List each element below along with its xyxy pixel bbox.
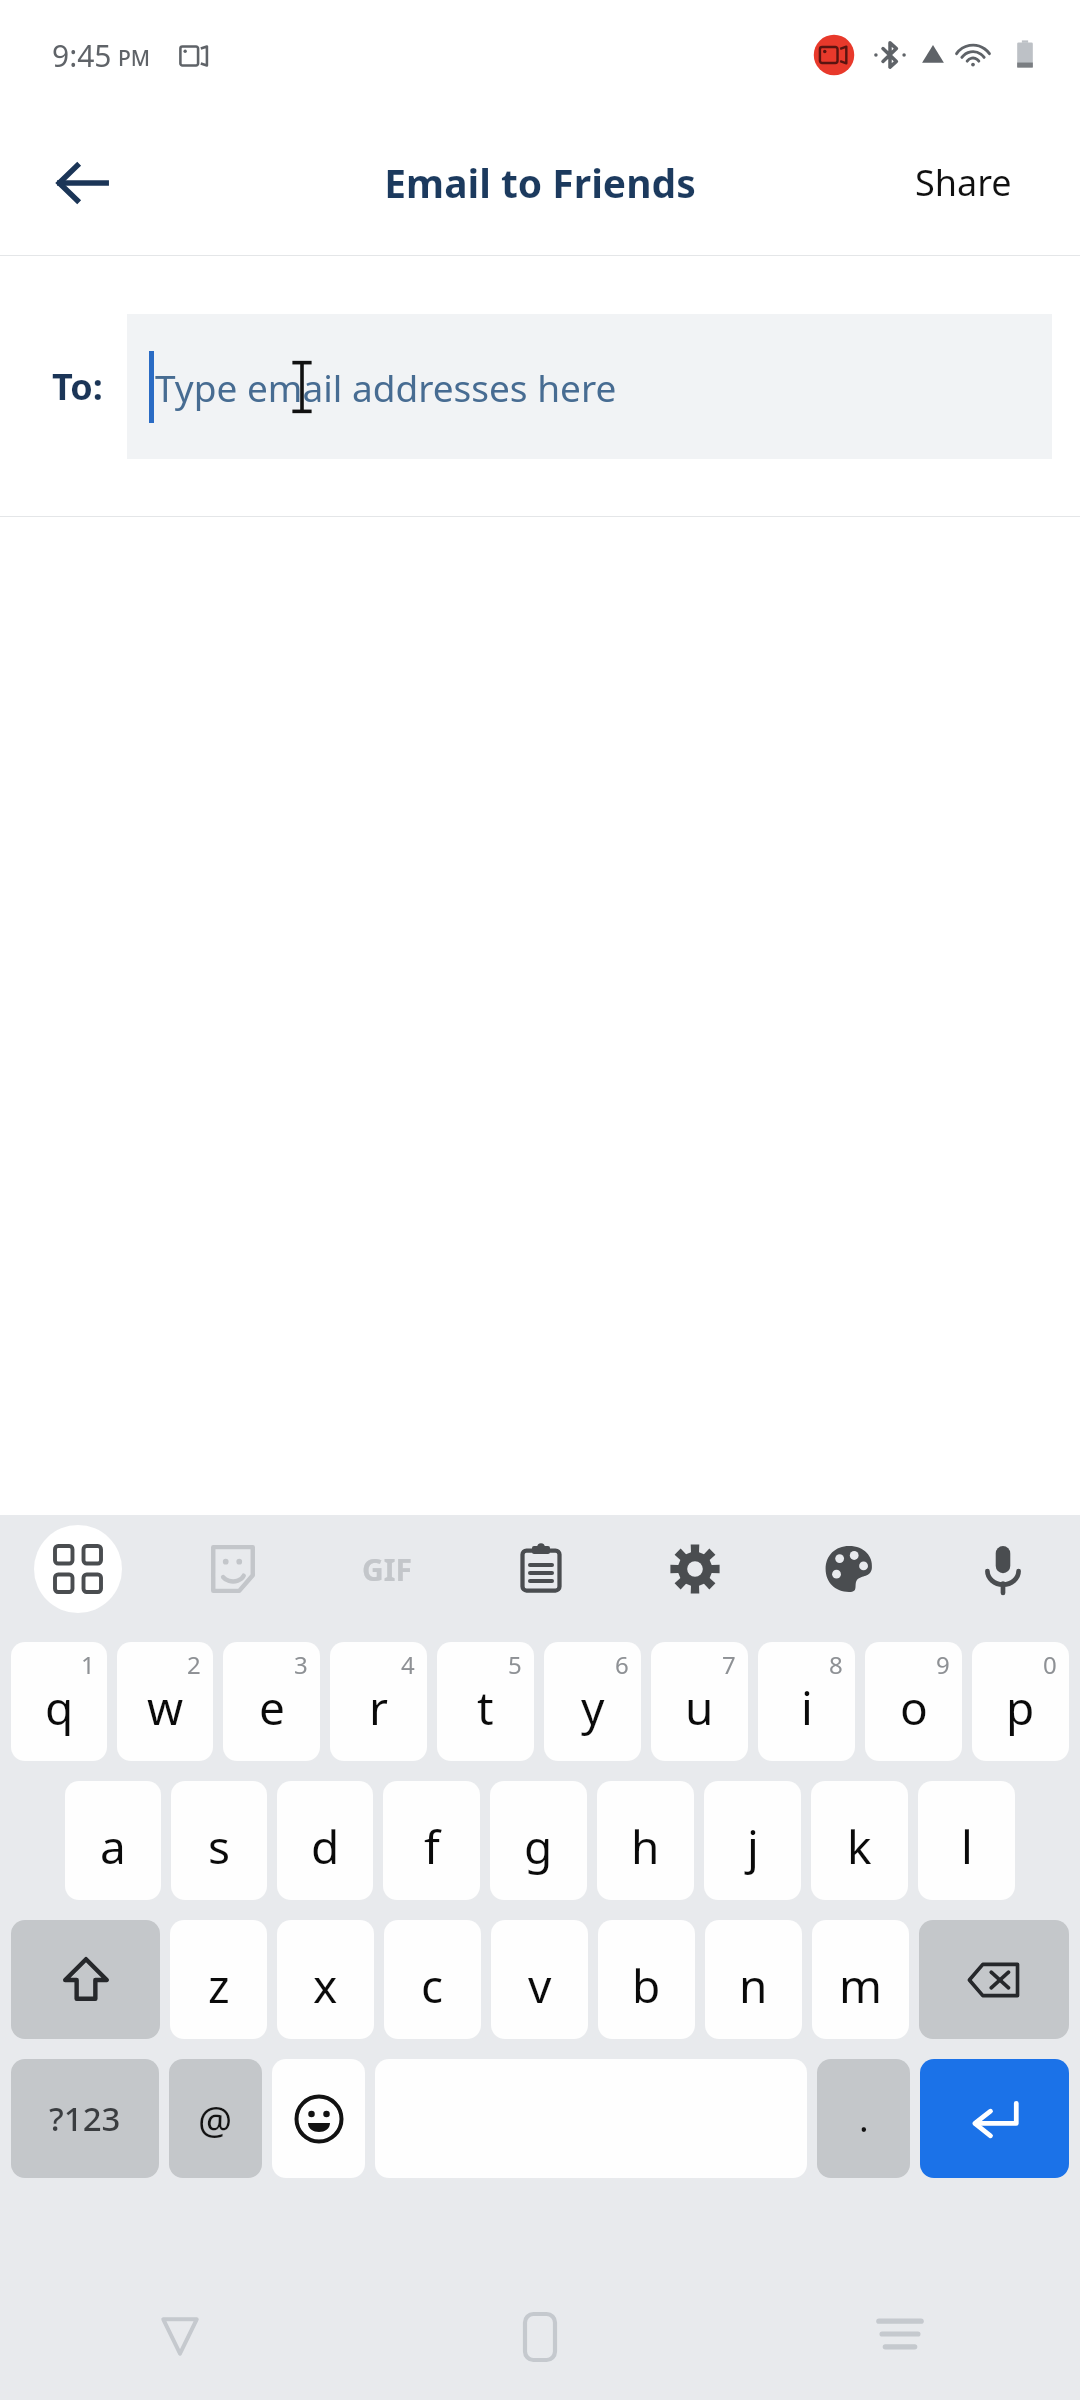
staticText: PM — [118, 44, 151, 73]
button[interactable]: Clipboard — [464, 1515, 618, 1623]
button[interactable]: Emoji — [272, 2059, 365, 2178]
staticText: c — [421, 1954, 444, 2017]
button[interactable]: r — [330, 1642, 427, 1761]
staticText: 3 — [294, 1648, 308, 1681]
staticText: o — [900, 1676, 928, 1739]
button[interactable]: b — [598, 1920, 695, 2039]
staticText: e — [259, 1676, 285, 1739]
button[interactable]: s — [171, 1781, 267, 1900]
staticText: v — [528, 1954, 552, 2017]
button[interactable]: @ — [169, 2059, 262, 2178]
staticText: f — [424, 1815, 440, 1878]
button[interactable]: a — [65, 1781, 161, 1900]
button[interactable]: q — [11, 1642, 107, 1761]
staticText: GIF — [362, 1549, 412, 1590]
button[interactable]: . — [817, 2059, 910, 2178]
button[interactable]: f — [383, 1781, 480, 1900]
button[interactable]: m — [812, 1920, 909, 2039]
button[interactable]: Voice input — [926, 1515, 1080, 1623]
button[interactable]: Back — [28, 128, 138, 238]
staticText: q — [45, 1676, 74, 1739]
staticText: z — [208, 1954, 230, 2017]
staticText: @ — [198, 2093, 233, 2145]
button[interactable]: y — [544, 1642, 641, 1761]
button[interactable]: Recents — [720, 2300, 1080, 2400]
button[interactable]: n — [705, 1920, 802, 2039]
staticText: w — [147, 1676, 184, 1739]
button[interactable]: Settings — [618, 1515, 772, 1623]
button[interactable]: v — [491, 1920, 588, 2039]
button[interactable]: d — [277, 1781, 373, 1900]
button[interactable]: l — [918, 1781, 1015, 1900]
button[interactable]: w — [117, 1642, 213, 1761]
button[interactable]: Theme — [772, 1515, 926, 1623]
staticText: 2 — [187, 1648, 201, 1681]
staticText: a — [100, 1815, 126, 1878]
button[interactable]: k — [811, 1781, 908, 1900]
staticText: To: — [52, 362, 103, 411]
button[interactable]: g — [490, 1781, 587, 1900]
staticText: i — [801, 1676, 813, 1739]
staticText: 0 — [1043, 1648, 1057, 1681]
staticText: s — [208, 1815, 231, 1878]
button[interactable]: Type email addresses here — [127, 314, 1052, 459]
staticText: y — [581, 1676, 605, 1739]
staticText: d — [311, 1815, 340, 1878]
button[interactable]: p — [972, 1642, 1069, 1761]
staticText: Share — [915, 158, 1012, 207]
button[interactable]: o — [865, 1642, 962, 1761]
button[interactable]: ?123 — [11, 2059, 159, 2178]
button[interactable]: GIF — [310, 1515, 464, 1623]
button[interactable]: Backspace — [919, 1920, 1069, 2039]
staticText: 5 — [508, 1648, 522, 1681]
staticText: n — [739, 1954, 768, 2017]
button[interactable]: Home — [360, 2300, 720, 2400]
staticText: x — [313, 1954, 338, 2017]
staticText: t — [477, 1676, 494, 1739]
staticText: k — [847, 1815, 872, 1878]
staticText: Email to Friends — [384, 156, 696, 209]
staticText: g — [524, 1815, 553, 1878]
button[interactable]: j — [704, 1781, 801, 1900]
staticText: m — [839, 1954, 883, 2017]
button[interactable]: z — [170, 1920, 267, 2039]
button[interactable]: x — [277, 1920, 374, 2039]
button[interactable]: c — [384, 1920, 481, 2039]
staticText: 6 — [615, 1648, 629, 1681]
staticText: b — [632, 1954, 661, 2017]
staticText: 9:45 — [52, 35, 112, 76]
staticText: h — [631, 1815, 660, 1878]
staticText: 7 — [722, 1648, 736, 1681]
staticText: 1 — [81, 1648, 95, 1681]
button[interactable]: Stickers — [155, 1515, 310, 1623]
staticText: Type email addresses here — [155, 362, 617, 412]
button[interactable]: h — [597, 1781, 694, 1900]
staticText: . — [859, 2094, 869, 2143]
staticText: ?123 — [49, 2096, 121, 2141]
button[interactable]: u — [651, 1642, 748, 1761]
staticText: 9 — [936, 1648, 950, 1681]
staticText: u — [685, 1676, 714, 1739]
button[interactable]: Enter — [920, 2059, 1069, 2178]
staticText: 4 — [401, 1648, 415, 1681]
button[interactable]: Back — [0, 2300, 360, 2400]
staticText: p — [1006, 1676, 1035, 1739]
button[interactable]: Shift — [11, 1920, 160, 2039]
button[interactable]: t — [437, 1642, 534, 1761]
button[interactable]: e — [223, 1642, 320, 1761]
staticText: l — [961, 1815, 973, 1878]
staticText: j — [747, 1815, 759, 1878]
staticText: r — [369, 1676, 388, 1739]
button[interactable]: i — [758, 1642, 855, 1761]
staticText: 8 — [829, 1648, 843, 1681]
button[interactable]: Apps — [0, 1515, 155, 1623]
button[interactable]: Share — [907, 148, 1020, 217]
